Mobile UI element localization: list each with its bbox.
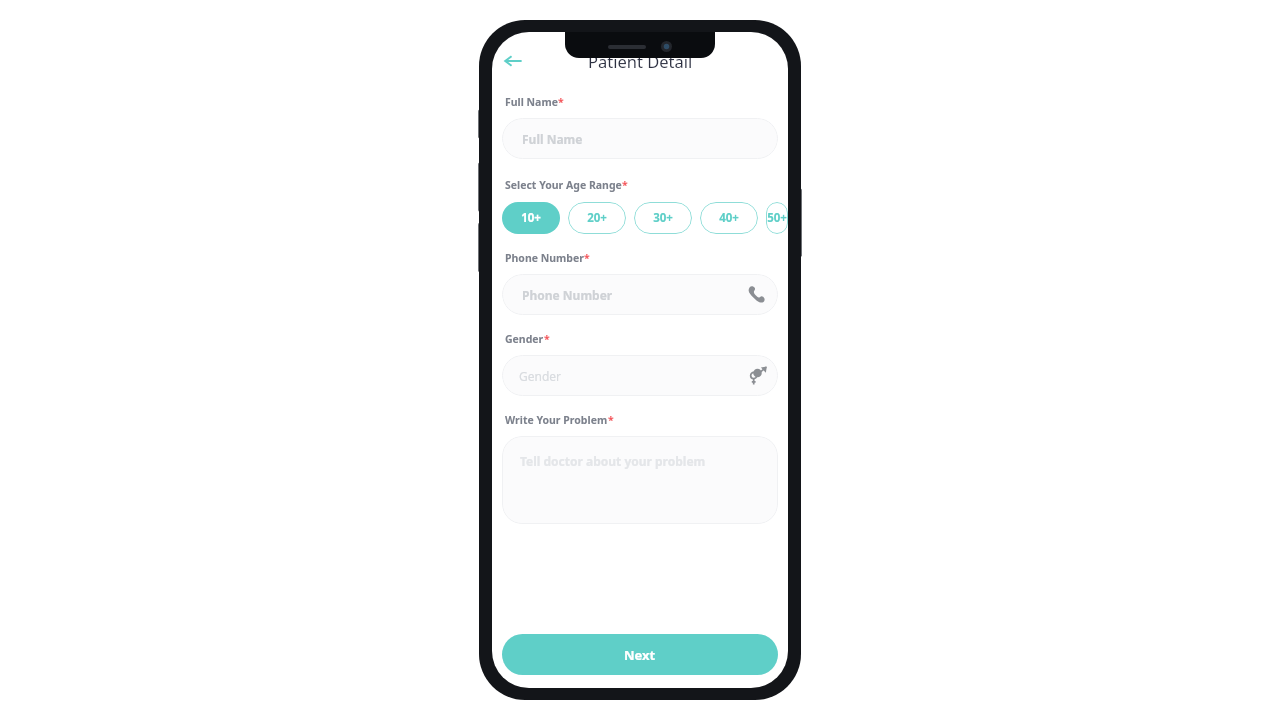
other: Gender bbox=[748, 366, 767, 385]
staticText: Next bbox=[624, 646, 656, 664]
staticText: Phone Number bbox=[522, 287, 613, 303]
staticText: Tell doctor about your problem bbox=[520, 453, 706, 469]
button[interactable]: Tell doctor about your problem bbox=[502, 436, 778, 524]
button[interactable]: 40+ bbox=[700, 202, 758, 234]
staticText: Write Your Problem bbox=[505, 413, 608, 427]
button[interactable]: Full Name bbox=[502, 118, 778, 159]
staticText: * bbox=[622, 178, 628, 192]
staticText: Full Name bbox=[522, 131, 583, 147]
button[interactable]: Next bbox=[502, 634, 778, 675]
staticText: Gender bbox=[505, 332, 544, 346]
button[interactable]: 20+ bbox=[568, 202, 626, 234]
staticText: 20+ bbox=[587, 210, 607, 226]
button[interactable]: 30+ bbox=[634, 202, 692, 234]
button[interactable]: 50+ bbox=[766, 202, 788, 234]
staticText: Full Name bbox=[505, 95, 558, 109]
button[interactable]: 10+ bbox=[502, 202, 560, 234]
staticText: Select Your Age Range bbox=[505, 178, 622, 192]
button[interactable]: Phone Number bbox=[502, 274, 778, 315]
other: Phone bbox=[748, 286, 765, 303]
staticText: Gender bbox=[519, 368, 562, 384]
staticText: 40+ bbox=[719, 210, 739, 226]
staticText: 50+ bbox=[767, 210, 787, 226]
staticText: * bbox=[584, 251, 590, 265]
staticText: Phone Number bbox=[505, 251, 584, 265]
staticText: 30+ bbox=[653, 210, 673, 226]
staticText: Patient Detail bbox=[588, 50, 693, 72]
button[interactable]: Gender bbox=[502, 355, 778, 396]
staticText: * bbox=[544, 332, 550, 346]
staticText: 10+ bbox=[521, 210, 541, 226]
staticText: * bbox=[608, 413, 614, 427]
button[interactable]: Back bbox=[495, 43, 531, 79]
staticText: * bbox=[558, 95, 564, 109]
